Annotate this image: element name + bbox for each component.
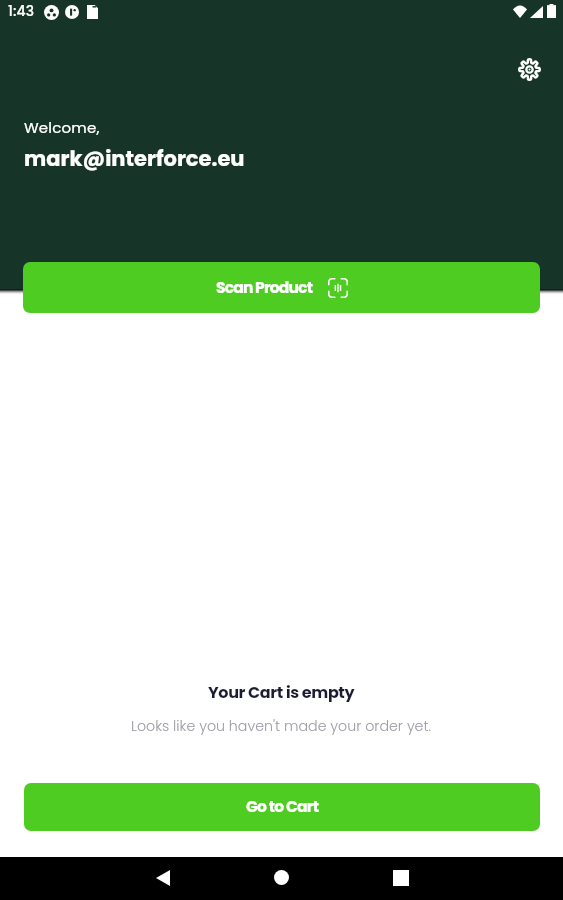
button[interactable]: Home bbox=[259, 856, 304, 899]
staticText: Looks like you haven't made your order y… bbox=[131, 716, 432, 736]
button[interactable]: Settings bbox=[511, 51, 547, 87]
staticText: Go to Cart bbox=[246, 796, 319, 818]
staticText: Welcome, bbox=[24, 117, 100, 138]
staticText: 1:43 bbox=[8, 1, 35, 21]
button[interactable]: Scan Product bbox=[23, 262, 540, 313]
staticText: Scan Product bbox=[216, 277, 313, 299]
staticText: Your Cart is empty bbox=[208, 681, 355, 703]
staticText: mark@interforce.eu bbox=[24, 144, 245, 173]
button[interactable]: Back bbox=[140, 856, 185, 899]
button[interactable]: Go to Cart bbox=[24, 783, 540, 831]
button[interactable]: Recents bbox=[378, 856, 423, 899]
